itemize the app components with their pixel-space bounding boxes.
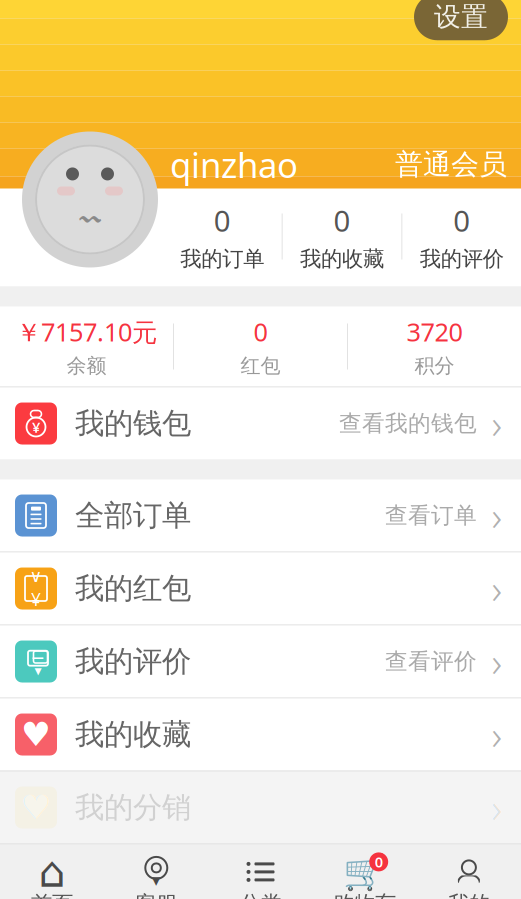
staticText: › — [491, 635, 502, 688]
staticText: 查看订单 — [385, 502, 477, 529]
staticText: 积分 — [414, 353, 454, 378]
staticText: 0 — [453, 201, 470, 240]
staticText: › — [491, 397, 502, 450]
staticText: › — [491, 489, 502, 542]
staticText: 我的钱包 — [75, 405, 191, 441]
button[interactable]: 0 — [163, 191, 282, 282]
staticText: 我的收藏 — [300, 246, 384, 272]
staticText: 全部订单 — [75, 497, 191, 533]
button[interactable]: ▼ — [0, 625, 521, 697]
staticText: 设置 — [434, 0, 488, 33]
staticText: 我的评价 — [75, 643, 191, 679]
button[interactable]: ∨ — [0, 552, 521, 624]
staticText: 我的评价 — [420, 246, 504, 272]
staticText: 我的订单 — [180, 246, 264, 272]
staticText: 客服 — [135, 891, 177, 899]
staticText: › — [491, 708, 502, 761]
staticText: ⌂ — [39, 848, 66, 896]
staticText: ¥ — [31, 588, 41, 611]
staticText: ♥ — [21, 716, 51, 753]
button[interactable]: 🛒 — [313, 850, 417, 899]
button[interactable]: ♥ — [0, 698, 521, 770]
staticText: 🛒 — [343, 852, 386, 892]
staticText: 普通会员 — [395, 147, 507, 182]
staticText: 3720 — [406, 315, 462, 348]
staticText: 红包 — [240, 353, 280, 378]
button[interactable]: ￥7157.10元 — [0, 305, 173, 388]
button[interactable]: 0 — [283, 191, 401, 282]
staticText: ♥ — [21, 789, 51, 826]
staticText: ▼ — [34, 666, 41, 676]
staticText: 我的分销 — [75, 789, 191, 825]
staticText: 0 — [214, 201, 231, 240]
staticText: 购物车 — [333, 891, 396, 899]
button[interactable]: 全部订单 — [0, 479, 521, 551]
staticText: 分类 — [239, 891, 281, 899]
button[interactable]: ⌂ — [0, 850, 104, 899]
button[interactable]: 0 — [174, 305, 347, 388]
staticText: 余额 — [66, 353, 106, 378]
staticText: 0 — [375, 852, 383, 872]
button[interactable]: ▾ — [104, 850, 208, 899]
button[interactable]: 3720 — [348, 305, 521, 388]
staticText: qinzhao — [170, 141, 298, 187]
staticText: 查看评价 — [385, 648, 477, 675]
button[interactable]: ♥ — [0, 771, 521, 843]
button[interactable]: ¥ — [0, 387, 521, 459]
button[interactable]: 我的 — [417, 850, 521, 899]
staticText: ▾ — [152, 870, 161, 890]
staticText: ￥7157.10元 — [16, 315, 157, 348]
staticText: 首页 — [31, 891, 73, 899]
button[interactable]: 设置 — [414, 0, 508, 40]
staticText: 我的红包 — [75, 570, 191, 606]
button[interactable]: 分类 — [208, 850, 313, 899]
staticText: 〰 — [79, 201, 100, 231]
staticText: ∨ — [29, 566, 42, 586]
staticText: 0 — [333, 201, 350, 240]
staticText: 0 — [253, 315, 267, 348]
staticText: ¥ — [32, 417, 40, 437]
staticText: 查看我的钱包 — [339, 410, 477, 437]
staticText: › — [491, 562, 502, 615]
staticText: › — [491, 781, 502, 834]
staticText: 我的收藏 — [75, 716, 191, 752]
button[interactable]: 0 — [402, 191, 521, 282]
staticText: 我的 — [448, 891, 490, 899]
